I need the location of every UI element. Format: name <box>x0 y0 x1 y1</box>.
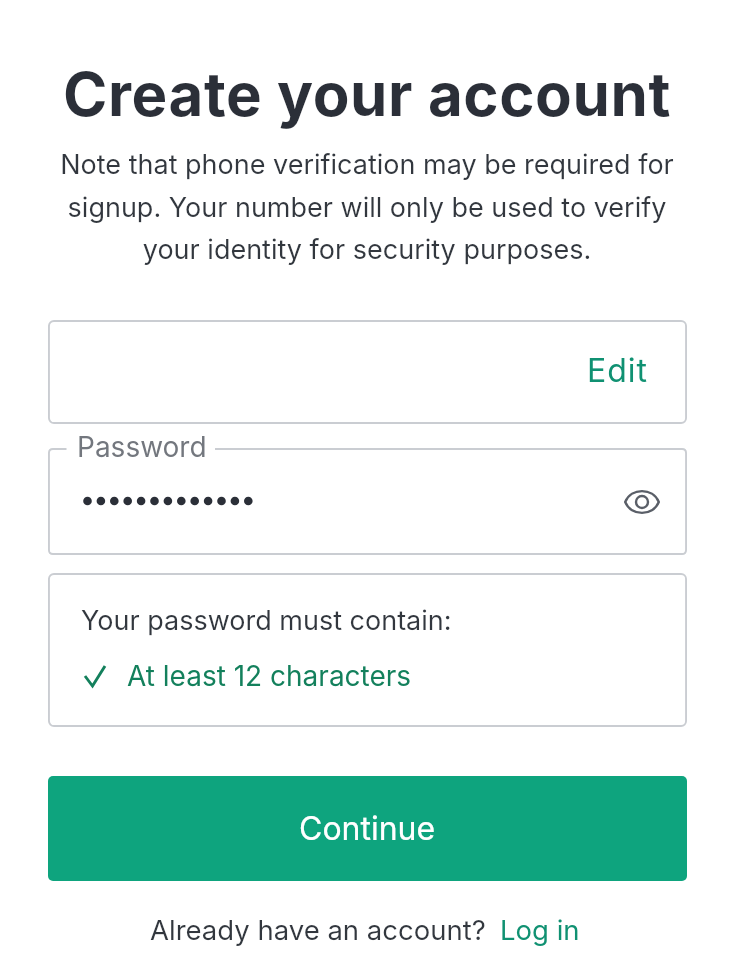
button[interactable]: Continue <box>48 776 687 881</box>
button[interactable]: Log in <box>500 913 580 946</box>
button[interactable]: Edit <box>571 337 665 404</box>
staticText: Create your account <box>0 58 737 131</box>
staticText: Edit <box>587 351 649 390</box>
button[interactable]: Show password <box>618 478 666 526</box>
staticText: Log in <box>500 913 580 946</box>
staticText: Already have an account? <box>150 913 486 946</box>
staticText: Your password must contain: <box>81 604 452 637</box>
button[interactable]: Edit <box>48 320 687 424</box>
staticText: Password <box>77 430 207 464</box>
staticText: Note that phone verification may be requ… <box>52 148 682 265</box>
staticText: At least 12 characters <box>127 659 412 693</box>
staticText: Continue <box>299 809 436 848</box>
